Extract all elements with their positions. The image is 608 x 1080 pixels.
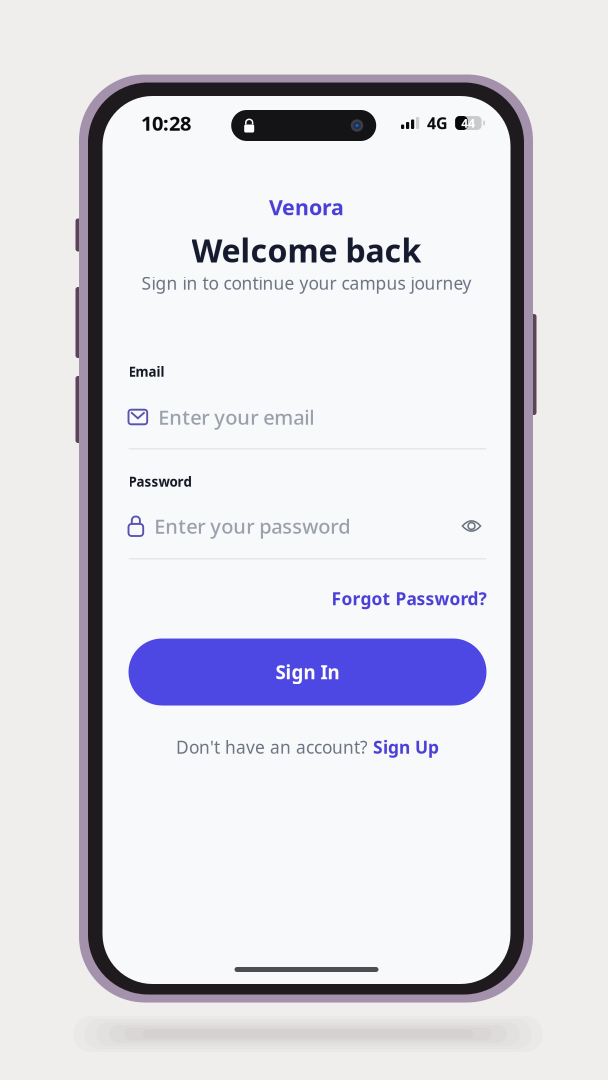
staticText: Sign in to continue your campus journey bbox=[141, 271, 471, 294]
staticText: 44 bbox=[461, 115, 475, 131]
staticText: Sign In bbox=[275, 660, 339, 684]
staticText: 10:28 bbox=[141, 110, 191, 136]
button[interactable]: Forgot Password? bbox=[128, 586, 486, 610]
staticText: Venora bbox=[269, 193, 344, 221]
staticText: Password bbox=[128, 473, 191, 490]
staticText: 4G bbox=[427, 112, 448, 134]
staticText: Sign Up bbox=[373, 735, 439, 758]
button[interactable]: Sign Up bbox=[373, 735, 439, 758]
staticText: Enter your password bbox=[154, 513, 350, 539]
staticText: Don't have an account? bbox=[176, 735, 368, 758]
staticText: Forgot Password? bbox=[331, 587, 486, 610]
button[interactable]: Sign In bbox=[128, 638, 486, 705]
staticText: Welcome back bbox=[191, 229, 421, 271]
staticText: Email bbox=[128, 363, 164, 380]
button[interactable]: Show password bbox=[456, 513, 486, 539]
staticText: Enter your email bbox=[158, 404, 314, 430]
